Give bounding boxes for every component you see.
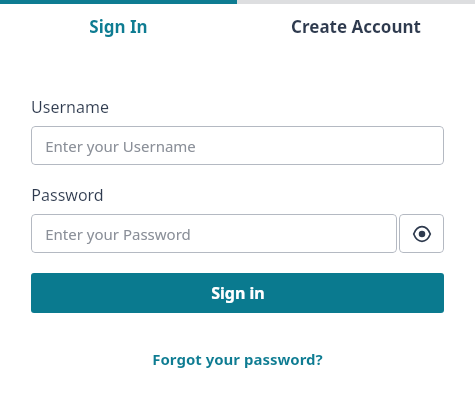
button[interactable]: Enter your Username [31, 126, 444, 165]
staticText: Enter your Username [45, 136, 196, 156]
button[interactable]: Sign in [31, 273, 444, 313]
staticText: Sign in [211, 282, 265, 304]
staticText: Enter your Password [45, 224, 191, 244]
staticText: Forgot your password? [152, 349, 323, 369]
staticText: Password [31, 184, 104, 206]
staticText: Sign In [89, 15, 148, 38]
button[interactable]: Forgot your password? [148, 345, 327, 373]
button[interactable]: Enter your Password [31, 214, 397, 253]
button[interactable]: Show password [399, 214, 444, 253]
button[interactable]: Sign In [0, 0, 237, 52]
button[interactable]: Create Account [237, 0, 475, 52]
staticText: Create Account [291, 15, 421, 38]
staticText: Username [31, 96, 109, 118]
